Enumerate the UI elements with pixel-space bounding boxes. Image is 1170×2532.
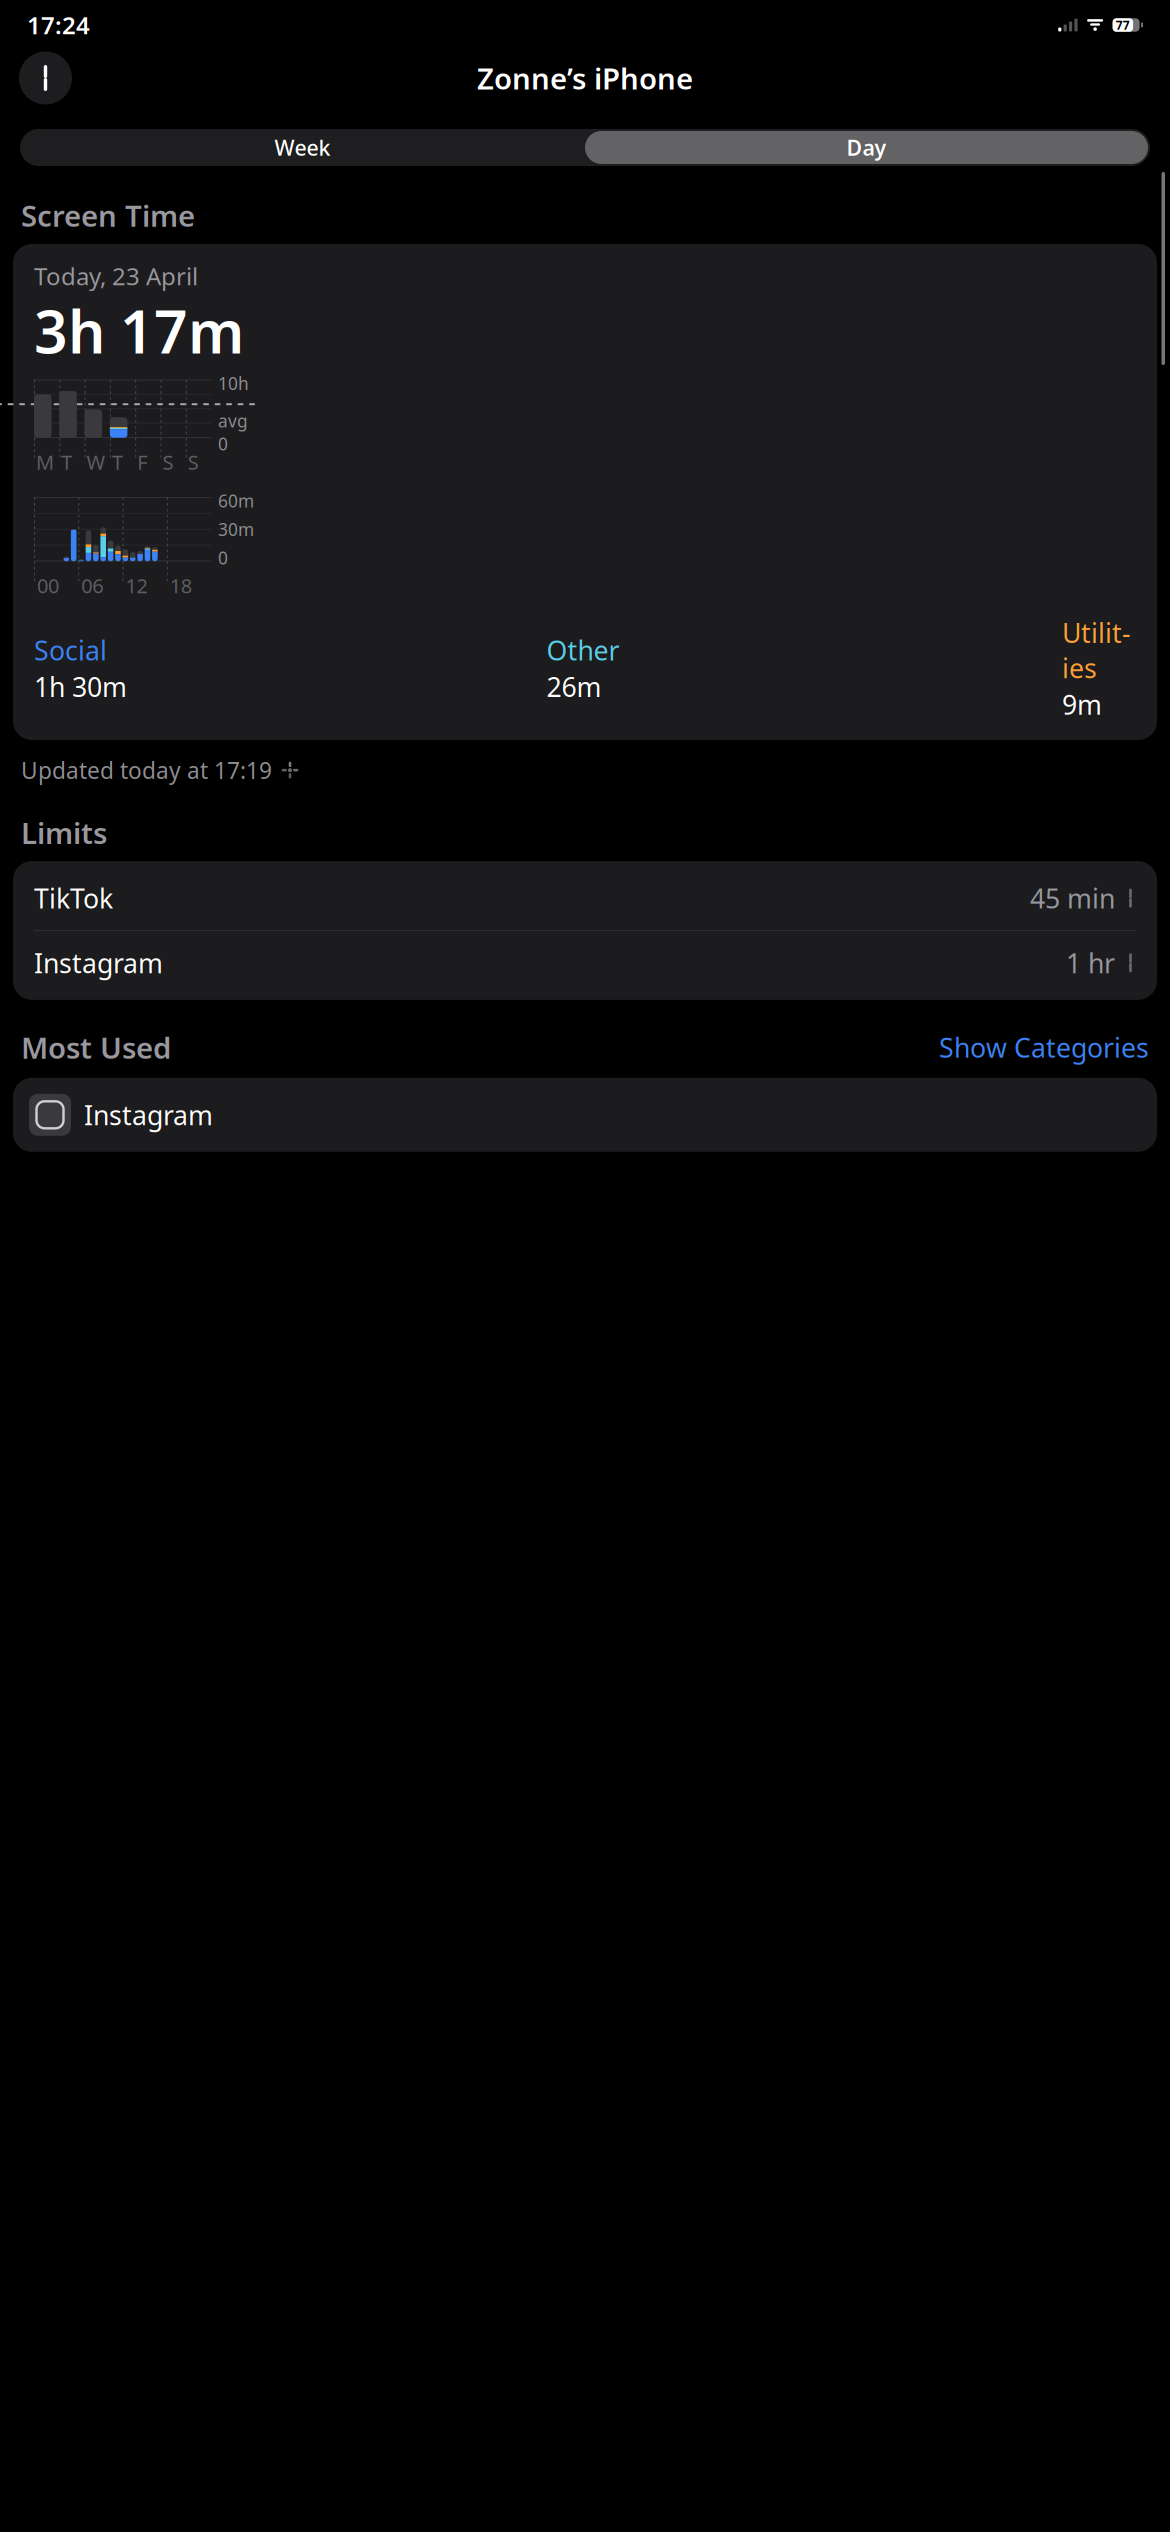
staticText: avg xyxy=(218,409,248,432)
button[interactable]: Instagram xyxy=(13,931,1157,995)
staticText: T xyxy=(112,449,123,475)
staticText: Social xyxy=(34,633,107,668)
staticText: 0 xyxy=(218,432,228,455)
staticText: Limits xyxy=(21,813,107,852)
staticText: Utilities xyxy=(1062,615,1131,686)
staticText: 00 xyxy=(37,572,59,599)
staticText: 06 xyxy=(81,572,103,599)
button[interactable]: Show Categories xyxy=(939,1030,1149,1065)
staticText: Instagram xyxy=(84,1097,213,1132)
staticText: Zonne’s iPhone xyxy=(477,58,693,97)
staticText: Instagram xyxy=(34,945,163,980)
staticText: TikTok xyxy=(34,880,113,916)
staticText: F xyxy=(137,449,147,475)
button[interactable]: Day xyxy=(585,129,1150,166)
staticText: 10h xyxy=(218,372,249,395)
button[interactable]: Back xyxy=(19,51,72,104)
button[interactable]: TikTok xyxy=(13,866,1157,930)
staticText: Screen Time xyxy=(21,196,195,235)
staticText: Updated today at 17:19 xyxy=(21,755,272,785)
staticText: 17:24 xyxy=(27,9,90,41)
staticText: S xyxy=(188,449,199,475)
staticText: 1 hr xyxy=(1066,945,1115,980)
staticText: Other xyxy=(546,633,619,668)
button[interactable]: Instagram xyxy=(13,1078,1157,1152)
staticText: Most Used xyxy=(21,1028,171,1067)
staticText: Day xyxy=(846,133,886,162)
staticText: 12 xyxy=(126,572,148,599)
staticText: 1h 30m xyxy=(34,669,127,704)
staticText: W xyxy=(87,449,106,475)
staticText: T xyxy=(61,449,72,475)
staticText: 60m xyxy=(218,489,254,512)
staticText: Show Categories xyxy=(939,1030,1149,1065)
staticText: 45 min xyxy=(1030,880,1115,916)
staticText: 0 xyxy=(218,546,228,569)
staticText: Week xyxy=(274,133,330,162)
staticText: 26m xyxy=(546,669,601,704)
staticText: 77 xyxy=(1116,17,1130,33)
staticText: Today, 23 April xyxy=(34,260,198,292)
staticText: 9m xyxy=(1062,687,1102,722)
staticText: M xyxy=(36,449,54,475)
staticText: 3h 17m xyxy=(34,292,244,370)
staticText: 30m xyxy=(218,518,254,541)
staticText: S xyxy=(162,449,173,475)
button[interactable]: Week xyxy=(20,129,585,166)
staticText: 18 xyxy=(170,572,192,599)
